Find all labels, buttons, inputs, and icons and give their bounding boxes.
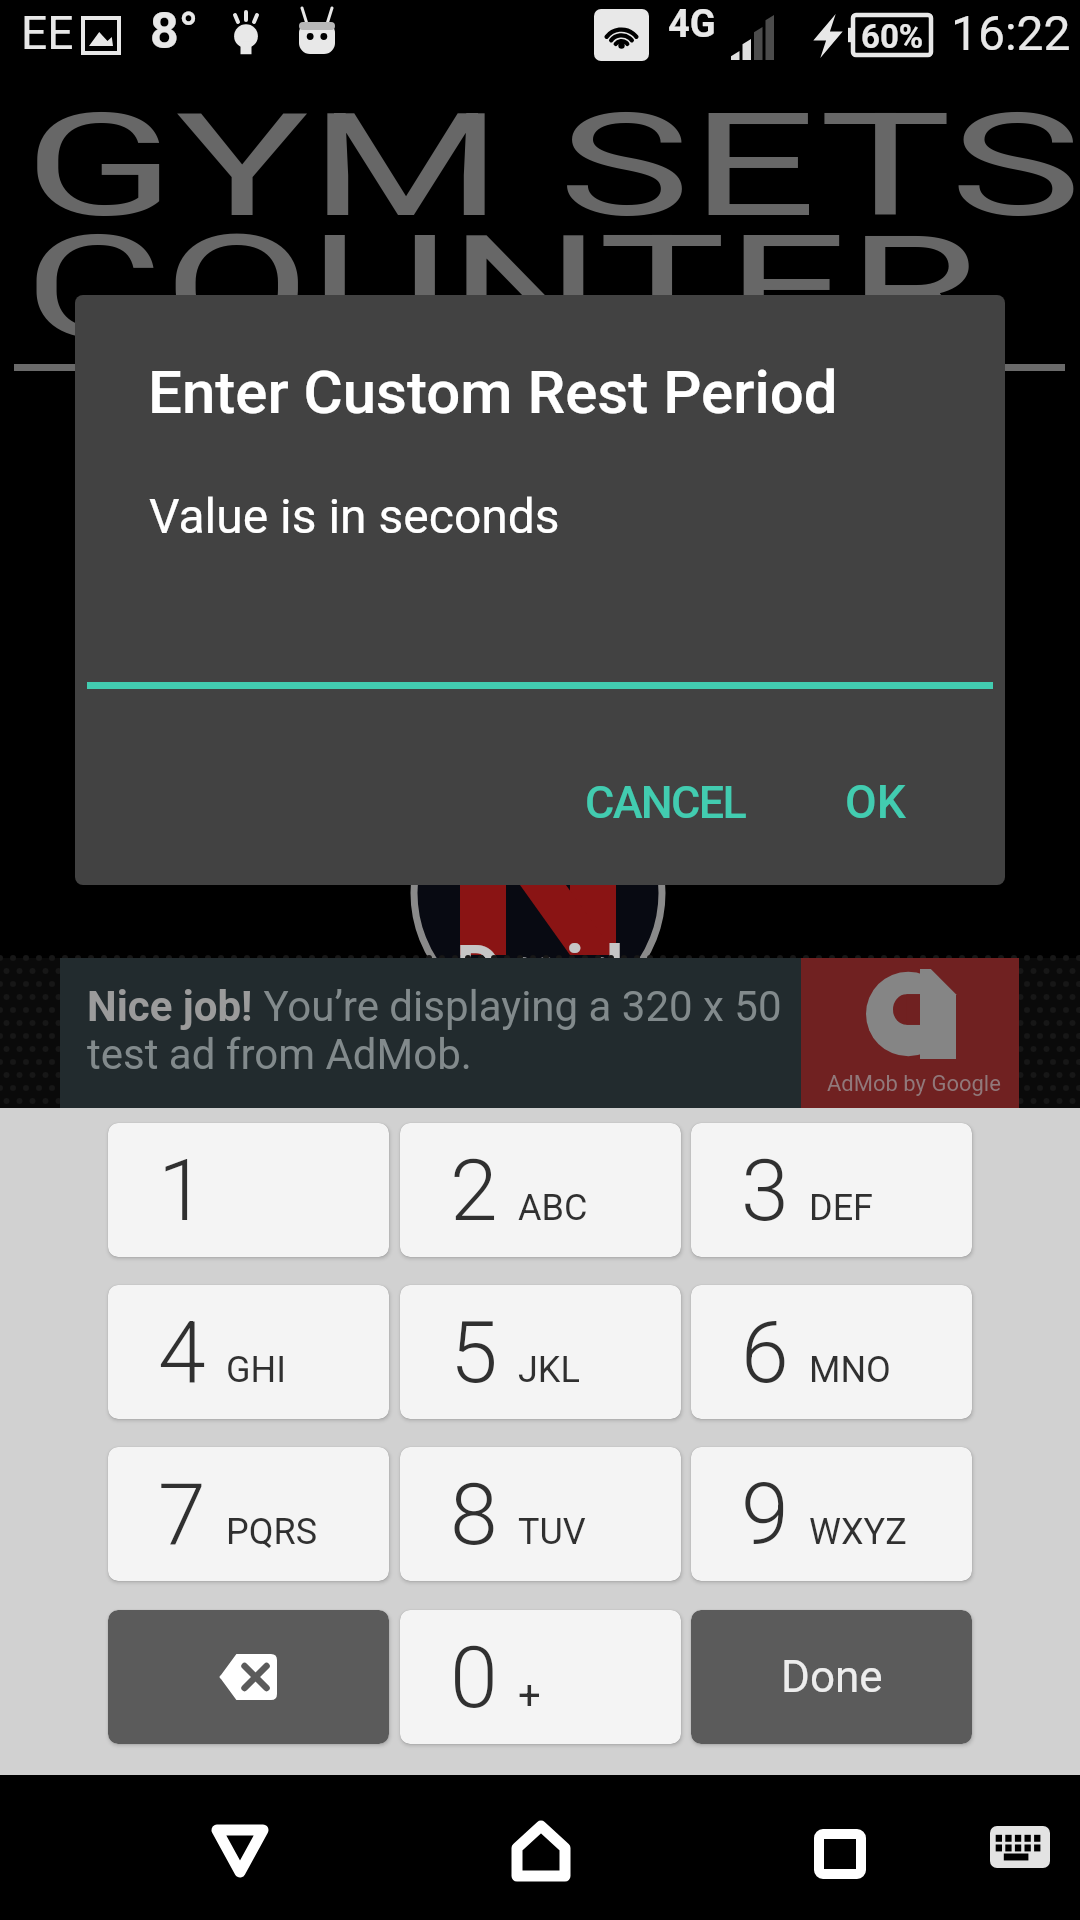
staticText: Enter Custom Rest Period [148, 357, 838, 427]
button[interactable]: 0 [400, 1610, 681, 1744]
staticText: Done [781, 1651, 883, 1703]
button[interactable]: 7 [108, 1447, 389, 1581]
staticText: 6 [741, 1302, 789, 1403]
staticText: 0 [450, 1627, 498, 1728]
staticText: CANCEL [585, 776, 746, 829]
button[interactable]: 8 [400, 1447, 681, 1581]
staticText: WXYZ [809, 1511, 907, 1553]
staticText: AdMob by Google [827, 1071, 1001, 1097]
button[interactable]: Done [691, 1610, 972, 1744]
button[interactable]: Recent apps [770, 1789, 910, 1919]
staticText: PQRS [226, 1511, 318, 1553]
staticText: GYM SETS [24, 82, 1080, 250]
staticText: DEF [809, 1187, 873, 1229]
button[interactable]: Advertisement [0, 958, 1080, 1108]
staticText: MNO [809, 1349, 891, 1391]
button[interactable]: Back [170, 1786, 310, 1916]
button[interactable]: CANCEL [570, 754, 760, 850]
staticText: test ad from AdMob. [87, 1030, 472, 1079]
staticText: 16:22 [951, 5, 1071, 61]
button[interactable]: Switch keyboard [960, 1797, 1080, 1897]
button[interactable]: 5 [400, 1285, 681, 1419]
staticText: + [518, 1672, 541, 1719]
staticText: 3 [741, 1140, 789, 1241]
button[interactable]: 6 [691, 1285, 972, 1419]
staticText: COUNTER [24, 204, 979, 372]
staticText: Value is in seconds [149, 488, 560, 544]
staticText: OK [845, 775, 906, 829]
staticText: 4G [668, 2, 716, 47]
staticText: 7 [158, 1464, 206, 1565]
staticText: TUV [518, 1511, 586, 1553]
staticText: 2 [450, 1140, 498, 1241]
button[interactable]: 9 [691, 1447, 972, 1581]
staticText: Nice job! [87, 982, 253, 1031]
staticText: ABC [518, 1187, 588, 1229]
staticText: EE [21, 6, 74, 60]
staticText: 8 [450, 1464, 498, 1565]
staticText: 1 [158, 1140, 206, 1241]
button[interactable]: 4 [108, 1285, 389, 1419]
staticText: 8° [150, 2, 199, 61]
button[interactable]: 3 [691, 1123, 972, 1257]
staticText: 5 [450, 1302, 498, 1403]
button[interactable]: 2 [400, 1123, 681, 1257]
staticText: GHI [226, 1349, 286, 1391]
button[interactable]: Home [471, 1786, 611, 1916]
staticText: 9 [741, 1464, 789, 1565]
button[interactable]: Backspace [108, 1610, 389, 1744]
button[interactable]: Rest period in seconds [87, 585, 993, 689]
button[interactable]: 1 [108, 1123, 389, 1257]
staticText: Droid [456, 930, 624, 1012]
staticText: JKL [518, 1349, 580, 1391]
staticText: You’re displaying a 320 x 50 [253, 982, 782, 1031]
button[interactable]: OK [814, 754, 936, 850]
staticText: 4 [158, 1302, 206, 1403]
staticText: 60% [861, 17, 924, 56]
